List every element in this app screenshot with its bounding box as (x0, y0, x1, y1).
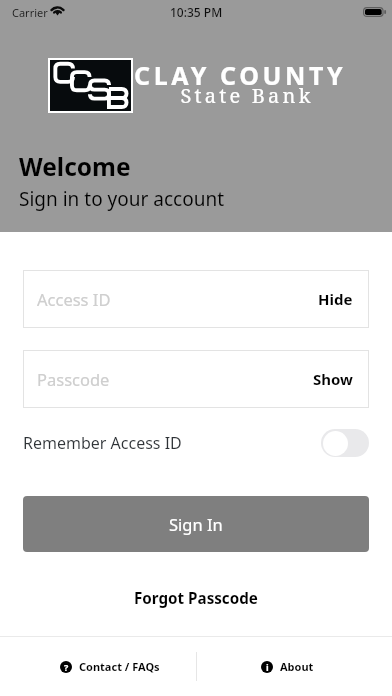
staticText: Passcode (37, 368, 110, 390)
button[interactable]: ? (60, 659, 160, 674)
staticText: Contact / FAQs (79, 659, 160, 674)
staticText: 10:35 PM (170, 4, 223, 20)
button[interactable]: Hide (302, 270, 369, 328)
staticText: Welcome (19, 150, 131, 183)
staticText: ? (64, 661, 69, 673)
staticText: Remember Access ID (23, 432, 182, 454)
button[interactable]: Passcode (23, 350, 369, 408)
staticText: Show (313, 369, 353, 389)
button[interactable]: Show (297, 350, 369, 408)
staticText: Forgot Passcode (134, 588, 258, 609)
button[interactable]: Remember Access ID (23, 427, 369, 459)
staticText: i (266, 661, 269, 673)
staticText: About (280, 659, 314, 674)
button[interactable]: i (261, 659, 314, 674)
staticText: CLAY COUNTY (134, 58, 347, 92)
staticText: Carrier (12, 5, 48, 20)
staticText: Sign In (169, 513, 223, 535)
staticText: Access ID (37, 288, 111, 310)
button[interactable]: Access ID (23, 270, 369, 328)
staticText: Sign in to your account (19, 186, 225, 212)
button[interactable]: Forgot Passcode (0, 585, 392, 611)
button[interactable]: Sign In (23, 496, 369, 552)
staticText: State Bank (120, 82, 374, 109)
staticText: Hide (318, 289, 353, 309)
